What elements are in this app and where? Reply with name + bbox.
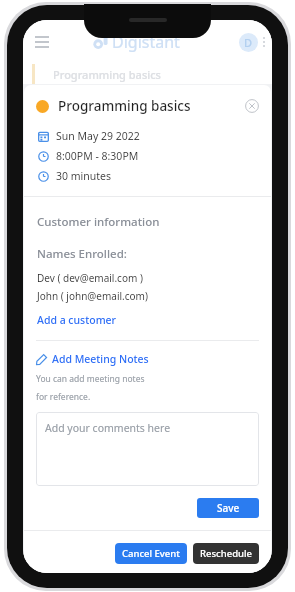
staticText: Reschedule (200, 547, 253, 560)
staticText: Customer information (37, 214, 160, 230)
button[interactable]: Add Meeting Notes (36, 352, 149, 366)
button[interactable]: Add your comments here (36, 412, 259, 486)
staticText: Digistant (112, 31, 180, 53)
staticText: John ( john@email.com) (37, 289, 148, 303)
staticText: Add Meeting Notes (52, 352, 149, 366)
button[interactable]: Cancel Event (115, 543, 187, 564)
staticText: Add a customer (37, 313, 117, 327)
staticText: Cancel Event (122, 547, 180, 560)
staticText: 30 minutes (56, 169, 111, 183)
staticText: You can add meeting notes (36, 373, 145, 385)
staticText: D (244, 35, 253, 50)
staticText: for reference. (36, 391, 91, 403)
staticText: Add your comments here (45, 421, 171, 435)
staticText: Programming basics (53, 67, 161, 82)
button[interactable]: More options (261, 35, 267, 49)
button[interactable]: Profile (239, 33, 258, 52)
staticText: Sun May 29 2022 (56, 129, 140, 143)
staticText: Names Enrolled: (37, 246, 127, 262)
button[interactable]: Reschedule (193, 543, 259, 564)
staticText: Programming basics (58, 97, 191, 115)
staticText: 8:00PM - 8:30PM (56, 149, 139, 163)
button[interactable]: Add a customer (37, 312, 117, 328)
button[interactable]: Save (197, 498, 259, 518)
button[interactable]: Close (245, 99, 259, 113)
button[interactable]: Menu (32, 33, 52, 51)
staticText: Dev ( dev@email.com ) (37, 271, 143, 285)
staticText: Save (217, 501, 240, 515)
